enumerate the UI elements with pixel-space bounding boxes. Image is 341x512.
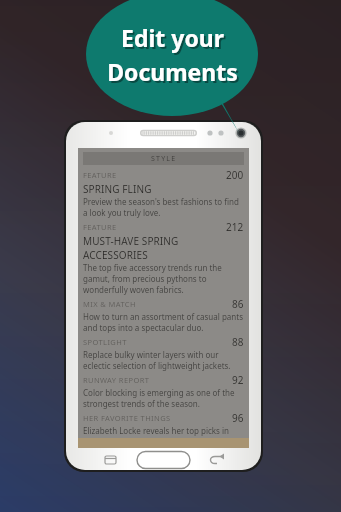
staticText: How to turn an assortment of casual pant… [83, 311, 244, 322]
staticText: wonderfully woven fabrics. [83, 284, 184, 295]
staticText: strongest trends of the season. [83, 398, 200, 409]
staticText: eclectic selection of lightweight jacket… [83, 360, 231, 371]
staticText: 86 [232, 297, 244, 311]
button[interactable]: FEATURE [83, 220, 244, 297]
staticText: 200 [226, 168, 244, 182]
staticText: FEATURE [83, 170, 226, 180]
staticText: gamut, from precious pythons to [83, 273, 207, 284]
button[interactable]: STYLE [83, 152, 244, 165]
staticText: Preview the season's best fashions to fi… [83, 196, 239, 207]
staticText: 212 [226, 220, 244, 234]
staticText: MUST-HAVE SPRING ACCESSORIES [83, 234, 244, 262]
staticText: RUNWAY REPORT [83, 375, 232, 385]
staticText: Edit your [121, 22, 224, 53]
staticText: MIX & MATCH [83, 299, 232, 309]
button[interactable]: MIX & MATCH [83, 297, 244, 335]
staticText: 88 [232, 335, 244, 349]
button[interactable]: RUNWAY REPORT [83, 373, 244, 411]
staticText: STYLE [151, 154, 177, 164]
staticText: Documents [107, 56, 238, 87]
staticText: Edit your [123, 24, 226, 55]
staticText: Replace bulky winter layers with our [83, 349, 219, 360]
staticText: a look you truly love. [83, 207, 161, 218]
staticText: HER FAVORITE THINGS [83, 413, 232, 423]
staticText: Documents [109, 58, 240, 89]
staticText: 96 [232, 411, 244, 425]
staticText: Color blocking is emerging as one of the [83, 387, 235, 398]
staticText: Elizabeth Locke reveals her top picks in [83, 425, 230, 436]
button[interactable]: FEATURE [83, 168, 244, 220]
button[interactable]: HER FAVORITE THINGS [83, 411, 244, 438]
staticText: The top five accessory trends run the [83, 262, 222, 273]
staticText: 92 [232, 373, 244, 387]
staticText: SPRING FLING [83, 182, 152, 196]
staticText: and tops into a spectacular duo. [83, 322, 204, 333]
button[interactable]: SPOTLIGHT [83, 335, 244, 373]
staticText: FEATURE [83, 222, 226, 232]
staticText: SPOTLIGHT [83, 337, 232, 347]
